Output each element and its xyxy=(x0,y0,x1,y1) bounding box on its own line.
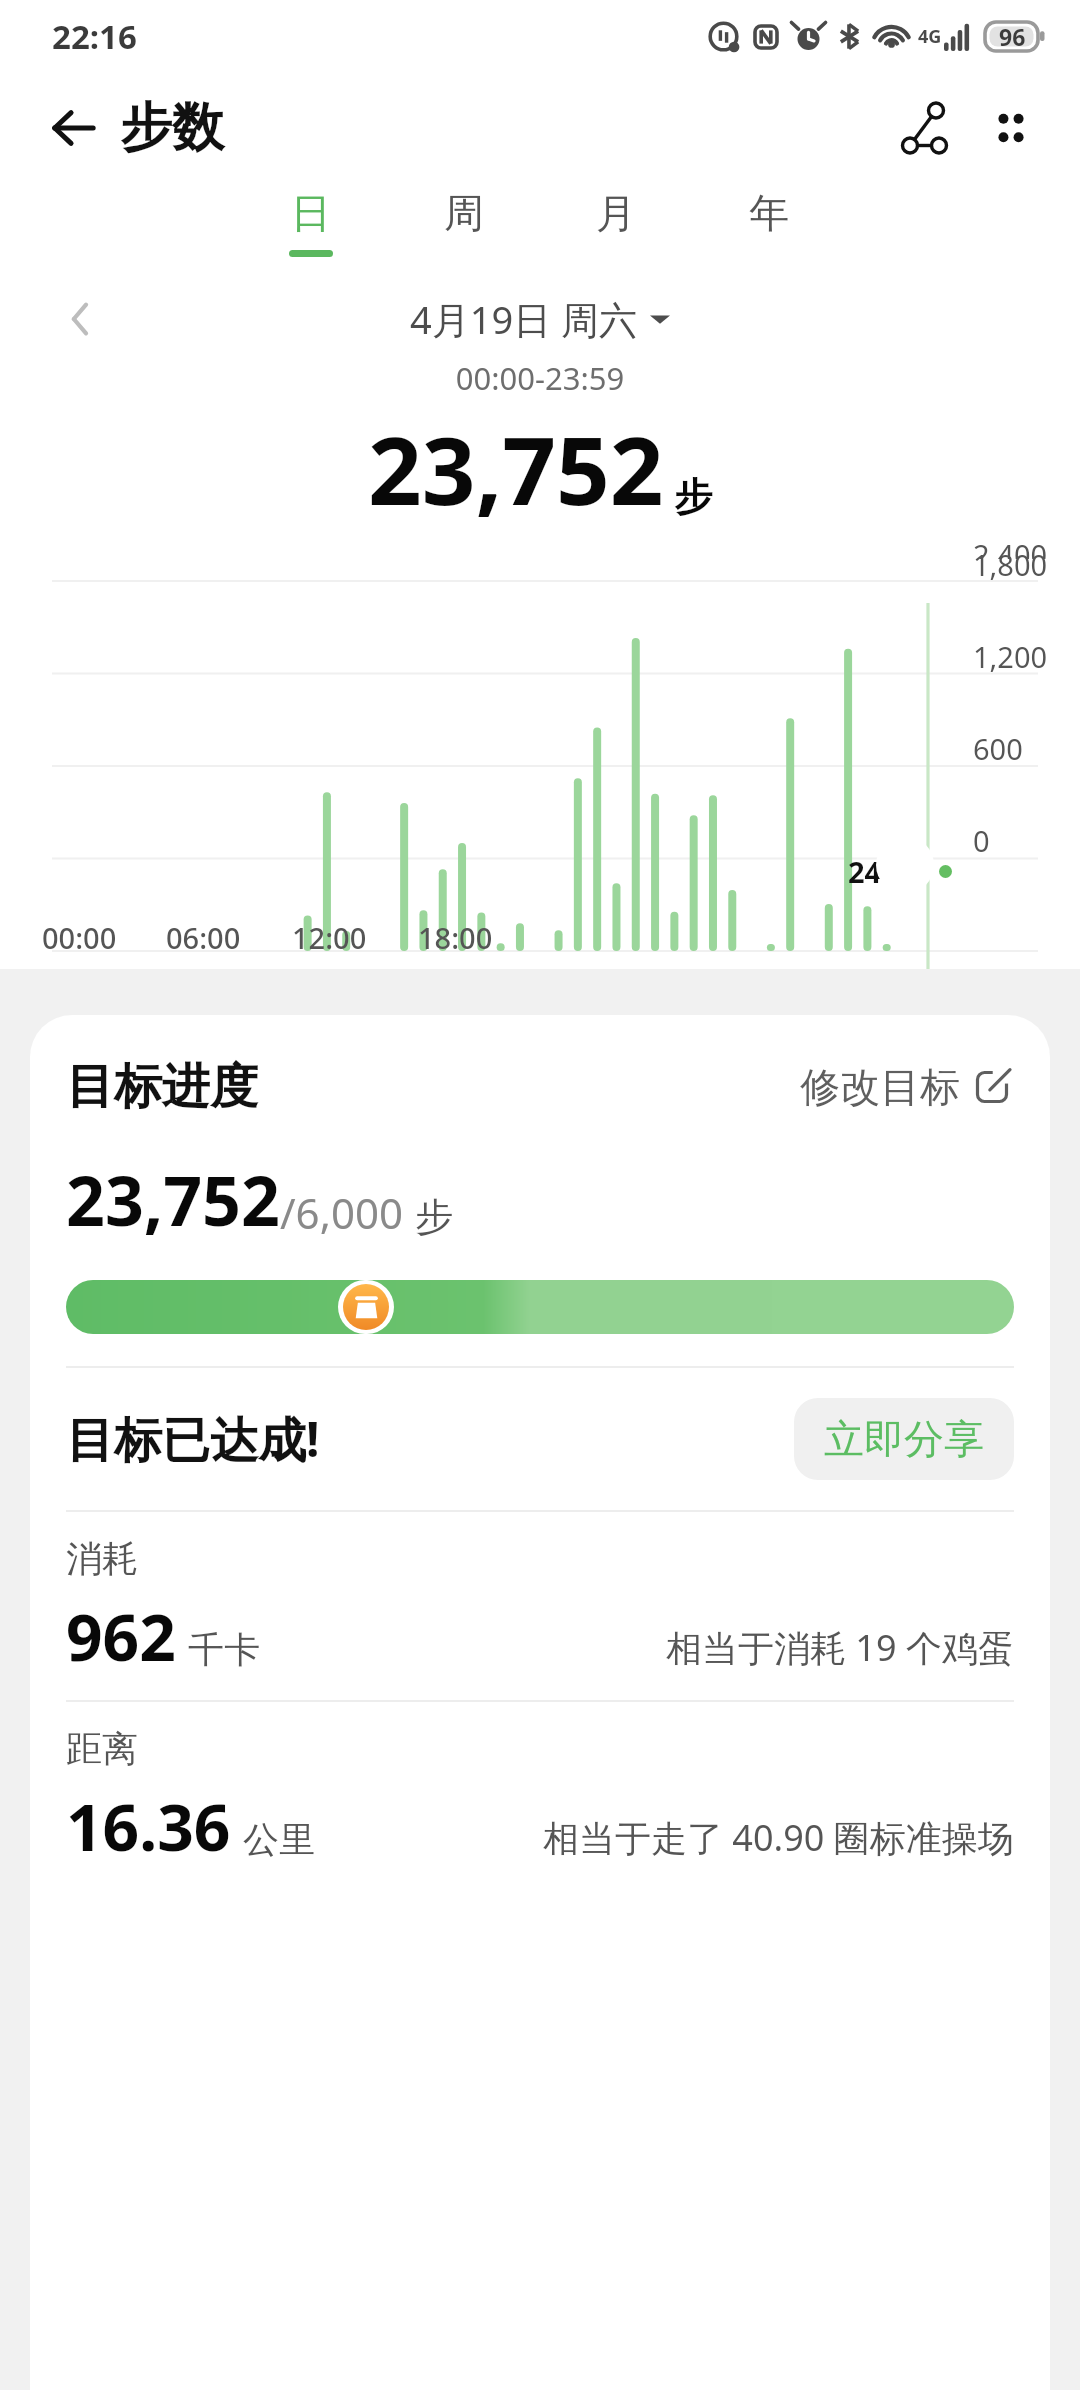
button[interactable]: Back xyxy=(38,93,108,163)
staticText: 公里 xyxy=(243,1817,315,1862)
staticText: 距离 xyxy=(66,1726,138,1771)
button[interactable]: 年 xyxy=(738,184,800,261)
staticText: 962 xyxy=(66,1593,176,1680)
button[interactable]: 立即分享 xyxy=(794,1398,1014,1480)
staticText: 96 xyxy=(999,21,1026,52)
staticText: 消耗 xyxy=(66,1536,138,1581)
button[interactable]: 日 xyxy=(280,184,342,261)
button[interactable]: 修改目标 xyxy=(796,1058,1014,1116)
button[interactable]: Share xyxy=(892,93,962,163)
staticText: 步 xyxy=(674,473,712,521)
button[interactable]: More options xyxy=(976,93,1046,163)
button[interactable]: Previous day xyxy=(52,290,110,348)
staticText: 00:00 xyxy=(42,918,117,957)
staticText: 0 xyxy=(973,821,990,860)
staticText: 步数 xyxy=(120,95,224,161)
staticText: 修改目标 xyxy=(800,1062,960,1112)
staticText: 目标已达成! xyxy=(66,1406,320,1472)
staticText: 22:16 xyxy=(52,14,137,59)
button[interactable] xyxy=(66,1280,1014,1334)
staticText: 年 xyxy=(749,188,789,238)
staticText: 相当于走了 40.90 圈标准操场 xyxy=(543,1813,1014,1862)
button[interactable]: 4月19日 周六 xyxy=(404,287,676,351)
staticText: 4G xyxy=(918,24,942,49)
staticText: 16.36 xyxy=(66,1783,231,1870)
staticText: 1,200 xyxy=(973,637,1048,676)
staticText: 600 xyxy=(973,729,1023,768)
button[interactable]: Expand details xyxy=(876,836,934,894)
staticText: 日 xyxy=(291,188,331,238)
staticText: 00:00-23:59 xyxy=(0,357,1080,399)
staticText: 18:00 xyxy=(418,918,493,957)
staticText: 步 xyxy=(415,1193,453,1241)
button[interactable]: 月 xyxy=(585,184,647,261)
button[interactable]: 周 xyxy=(433,184,495,261)
staticText: 06:00 xyxy=(166,918,241,957)
staticText: 月 xyxy=(596,188,636,238)
staticText: 立即分享 xyxy=(824,1414,984,1464)
staticText: 24:00 xyxy=(848,852,923,891)
staticText: 相当于消耗 19 个鸡蛋 xyxy=(666,1623,1014,1672)
staticText: 12:00 xyxy=(292,918,367,957)
staticText: 1,800 xyxy=(973,545,1048,584)
staticText: 23,752 xyxy=(368,405,664,533)
staticText: 4月19日 周六 xyxy=(410,293,638,345)
staticText: 2,400 xyxy=(973,535,1048,559)
staticText: 千卡 xyxy=(188,1627,260,1672)
staticText: 周 xyxy=(444,188,484,238)
staticText: 23,752 xyxy=(66,1153,280,1246)
staticText: /6,000 xyxy=(280,1184,403,1241)
staticText: 目标进度 xyxy=(66,1057,258,1117)
